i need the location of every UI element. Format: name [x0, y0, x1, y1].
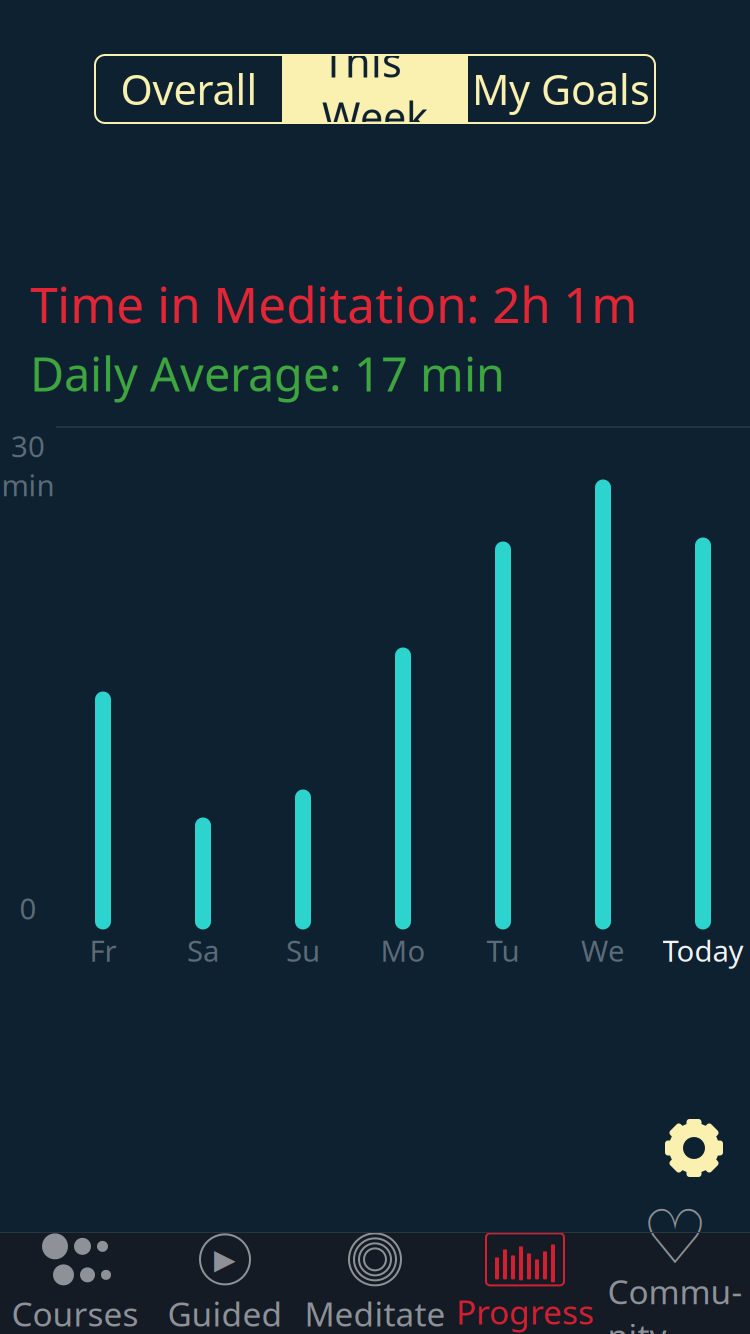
- staticText: ♡: [641, 1195, 708, 1280]
- staticText: 30: [11, 426, 45, 465]
- staticText: Fr: [89, 931, 116, 970]
- staticText: Guided: [167, 1291, 282, 1334]
- staticText: Overall: [120, 62, 257, 116]
- staticText: Time in Meditation: 2h 1m: [30, 271, 637, 336]
- button[interactable]: ▶: [150, 1232, 300, 1334]
- staticText: My Goals: [472, 62, 650, 116]
- staticText: Today: [662, 931, 743, 970]
- staticText: Daily Average: 17 min: [30, 342, 505, 404]
- button[interactable]: Progress: [450, 1232, 600, 1334]
- button[interactable]: Settings: [652, 1106, 736, 1190]
- staticText: Progress: [456, 1289, 594, 1334]
- staticText: Su: [286, 931, 320, 970]
- staticText: Sa: [187, 931, 219, 970]
- button[interactable]: This Week: [282, 55, 468, 123]
- staticText: min: [1, 465, 54, 504]
- staticText: This Week: [322, 34, 428, 144]
- staticText: Meditate: [304, 1291, 445, 1334]
- button[interactable]: Meditate: [300, 1232, 450, 1334]
- button[interactable]: Overall: [96, 55, 282, 123]
- button[interactable]: Courses: [0, 1232, 150, 1334]
- staticText: Tu: [486, 931, 519, 970]
- button[interactable]: My Goals: [468, 55, 654, 123]
- button[interactable]: ♡: [600, 1232, 750, 1334]
- staticText: We: [581, 931, 625, 970]
- staticText: ▶: [214, 1243, 236, 1275]
- staticText: 0: [19, 888, 36, 927]
- staticText: Community: [607, 1269, 742, 1334]
- staticText: Mo: [380, 931, 425, 970]
- staticText: Courses: [11, 1291, 138, 1334]
